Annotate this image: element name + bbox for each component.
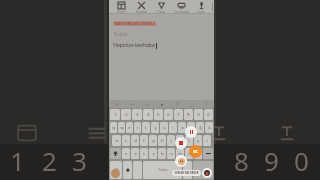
button[interactable]: 3 [132,109,142,120]
button[interactable]: Format [131,0,151,14]
button[interactable]: t [142,122,150,133]
button[interactable]: 2 [121,109,131,120]
staticText: s [125,138,127,143]
button[interactable]: f [140,135,148,146]
button[interactable]: Toolbar action [169,100,184,108]
button[interactable]: 6 [164,109,173,120]
button[interactable]: y [151,122,159,133]
staticText: w [120,125,124,130]
button[interactable]: 8 [184,109,193,120]
button[interactable]: v [149,148,157,159]
button[interactable]: Toolbar action [184,100,199,108]
button[interactable]: 0 [204,109,213,120]
staticText: Başlık [113,30,128,37]
button[interactable]: ⬤ [123,161,132,179]
button[interactable]: Recorder menu [189,145,202,158]
button[interactable]: ş [194,135,202,146]
staticText: 8 [187,112,190,117]
button[interactable]: SCREEN RECORDER [174,170,199,176]
staticText: q [112,125,115,130]
button[interactable]: Comment [171,0,191,14]
staticText: Comment [174,10,189,14]
button[interactable]: o [178,122,186,133]
button[interactable]: g [149,135,157,146]
staticText: ş [197,138,199,143]
button[interactable]: n [167,148,175,159]
staticText: 5 [157,112,160,117]
staticText: o [181,125,184,130]
staticText: REC [193,150,198,154]
button[interactable]: h [158,135,166,146]
button[interactable]: w [118,122,125,133]
staticText: 0 [294,143,309,178]
button[interactable]: s [122,135,130,146]
button[interactable]: e [126,122,133,133]
button[interactable]: Toolbar action [154,100,169,108]
button[interactable]: 5 [154,109,163,120]
staticText: Türkçe [158,168,168,172]
button[interactable]: i [203,135,211,146]
button[interactable]: Front camera [175,155,187,167]
staticText: 1 [10,143,25,178]
staticText: k [179,138,182,143]
button[interactable]: Space [143,161,182,179]
button[interactable]: Toolbar action [124,100,139,108]
staticText: ƒ [176,101,178,107]
staticText: r [137,125,139,130]
staticText: 8 [234,143,249,178]
staticText: ⬤ [126,168,130,172]
staticText: ğ [199,125,202,130]
staticText: 2 [42,143,57,178]
staticText: KATEGORİLERİ DÜZENLE [114,21,155,26]
button[interactable]: Avatar [111,169,120,178]
staticText: u [163,125,166,130]
button[interactable]: Enter [193,161,213,179]
button[interactable]: Toolbar action [109,100,124,108]
button[interactable]: r [134,122,141,133]
button[interactable]: m [176,148,184,159]
staticText: □ [190,102,194,107]
staticText: 9 [264,143,279,178]
button[interactable]: b [158,148,166,159]
button[interactable]: Voice [191,0,211,14]
button[interactable]: ç [194,148,202,159]
button[interactable]: a [112,135,121,146]
button[interactable]: Stop recording [175,137,187,149]
button[interactable]: k [176,135,184,146]
button[interactable]: ı [169,122,177,133]
button[interactable]: ğ [196,122,204,133]
button[interactable]: !#1 [110,161,122,179]
button[interactable]: x [131,148,139,159]
button[interactable]: ü [205,122,213,133]
button[interactable]: 1 [110,109,120,120]
button[interactable]: . [183,161,192,179]
button[interactable]: j [167,135,175,146]
button[interactable]: 4 [143,109,153,120]
button[interactable]: More options [211,0,214,14]
button[interactable]: Insert [111,0,131,14]
button[interactable]: 9 [194,109,203,120]
staticText: j [170,138,172,143]
button[interactable]: Pause recording [185,126,197,138]
staticText: 3 [72,143,87,178]
button[interactable]: q [110,122,117,133]
button[interactable]: c [140,148,148,159]
button[interactable]: z [122,148,130,159]
button[interactable]: 7 [174,109,183,120]
button[interactable]: ö [185,148,193,159]
button[interactable]: Backspace [203,148,213,159]
staticText: ✂ [130,102,134,107]
staticText: b [161,151,164,156]
button[interactable]: Shift [110,148,121,159]
staticText: l [188,138,190,143]
button[interactable]: p [187,122,195,133]
button[interactable]: u [160,122,168,133]
button[interactable]: , [133,161,142,179]
staticText: Insert [117,10,126,14]
button[interactable]: Recorder avatar [202,168,212,178]
button[interactable]: l [185,135,193,146]
button[interactable]: Page [151,0,171,14]
button[interactable]: d [131,135,139,146]
